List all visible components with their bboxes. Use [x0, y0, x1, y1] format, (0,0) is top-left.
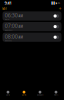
button[interactable]: Edit	[2, 7, 7, 10]
staticText: Stopwatch	[36, 94, 43, 96]
button[interactable]: Timers	[48, 91, 64, 96]
staticText: World	[6, 94, 10, 96]
button[interactable]: 06:30	[2, 11, 61, 21]
staticText: AM	[18, 14, 22, 18]
button[interactable]: Add alarm	[58, 5, 61, 12]
button[interactable]: Alarms	[16, 91, 32, 96]
staticText: Timers	[53, 94, 58, 96]
staticText: Edit	[2, 7, 7, 10]
staticText: ▐▐ ◗ ▭	[50, 1, 60, 4]
staticText: AM	[18, 36, 22, 39]
button[interactable]: 08:00	[2, 33, 61, 42]
button[interactable]: Stopwatch	[32, 91, 48, 96]
staticText: 06:30	[5, 12, 18, 19]
staticText: 07:00	[5, 22, 18, 29]
staticText: Alarm	[5, 19, 9, 20]
staticText: Weekend	[5, 40, 12, 42]
button[interactable]: 07:00	[2, 22, 61, 31]
staticText: +	[58, 5, 61, 12]
staticText: Weekdays	[5, 29, 13, 31]
staticText: AM	[18, 25, 22, 28]
button[interactable]: World	[0, 91, 16, 96]
staticText: 9:41	[4, 0, 11, 6]
staticText: Alarms	[21, 94, 26, 96]
staticText: 08:00	[5, 33, 18, 40]
